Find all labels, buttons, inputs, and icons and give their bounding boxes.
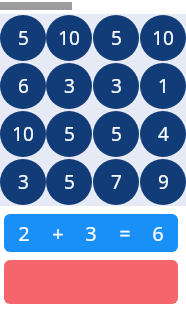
staticText: 5 [111, 25, 122, 51]
button[interactable]: 3 [0, 159, 46, 205]
button[interactable]: 3 [93, 63, 139, 109]
staticText: 2 [18, 220, 30, 247]
staticText: 10 [152, 25, 174, 51]
staticText: 3 [18, 169, 29, 195]
staticText: 7 [111, 169, 122, 195]
button[interactable]: 1 [140, 63, 186, 109]
button[interactable]: 5 [0, 15, 46, 61]
staticText: 3 [111, 73, 122, 99]
staticText: 3 [85, 220, 97, 247]
staticText: 6 [18, 73, 29, 99]
staticText: 5 [64, 121, 75, 147]
button[interactable]: 5 [93, 15, 139, 61]
staticText: 1 [158, 73, 169, 99]
button[interactable]: 10 [46, 15, 92, 61]
button[interactable]: 4 [140, 111, 186, 157]
button[interactable]: Answer area [4, 260, 178, 304]
button[interactable]: 2 [4, 214, 178, 252]
staticText: = [119, 220, 131, 247]
button[interactable]: 10 [0, 111, 46, 157]
button[interactable]: 3 [46, 63, 92, 109]
button[interactable]: 7 [93, 159, 139, 205]
button[interactable]: 10 [140, 15, 186, 61]
button[interactable]: 9 [140, 159, 186, 205]
staticText: 6 [152, 220, 164, 247]
staticText: 10 [12, 121, 34, 147]
staticText: 3 [64, 73, 75, 99]
staticText: 10 [58, 25, 80, 51]
staticText: + [52, 220, 64, 247]
button[interactable]: 5 [93, 111, 139, 157]
staticText: 9 [158, 169, 169, 195]
staticText: 5 [18, 25, 29, 51]
staticText: 4 [158, 121, 169, 147]
staticText: 5 [64, 169, 75, 195]
button[interactable]: 6 [0, 63, 46, 109]
button[interactable]: 5 [46, 159, 92, 205]
staticText: 5 [111, 121, 122, 147]
button[interactable]: 5 [46, 111, 92, 157]
